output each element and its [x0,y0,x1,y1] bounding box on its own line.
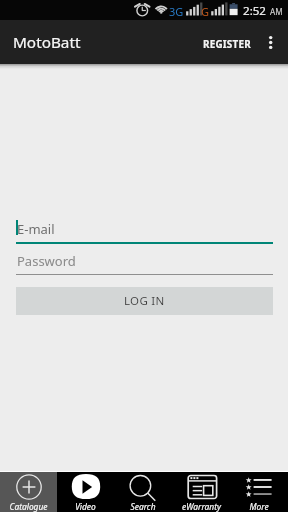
staticText: G [201,4,210,19]
staticText: 3G [169,4,184,19]
button[interactable]: Video [57,472,114,512]
staticText: Catalogue [9,501,48,512]
button[interactable]: More [230,472,288,512]
staticText: 2:52 [243,3,267,19]
staticText: More [249,501,269,512]
button[interactable]: REGISTER [196,20,258,64]
staticText: E-mail [17,220,55,238]
staticText: eWarranty [182,501,221,512]
button[interactable]: Catalogue [0,472,57,512]
button[interactable]: LOG IN [16,287,273,315]
staticText: Password [17,252,76,270]
button[interactable]: eWarranty [172,472,230,512]
button[interactable]: More options [254,20,288,64]
staticText: LOG IN [124,293,165,309]
staticText: REGISTER [203,37,251,50]
button[interactable]: Search [114,472,172,512]
staticText: MotoBatt [13,32,81,53]
staticText: Video [75,501,96,512]
staticText: Search [130,501,156,512]
staticText: AM [270,6,283,17]
